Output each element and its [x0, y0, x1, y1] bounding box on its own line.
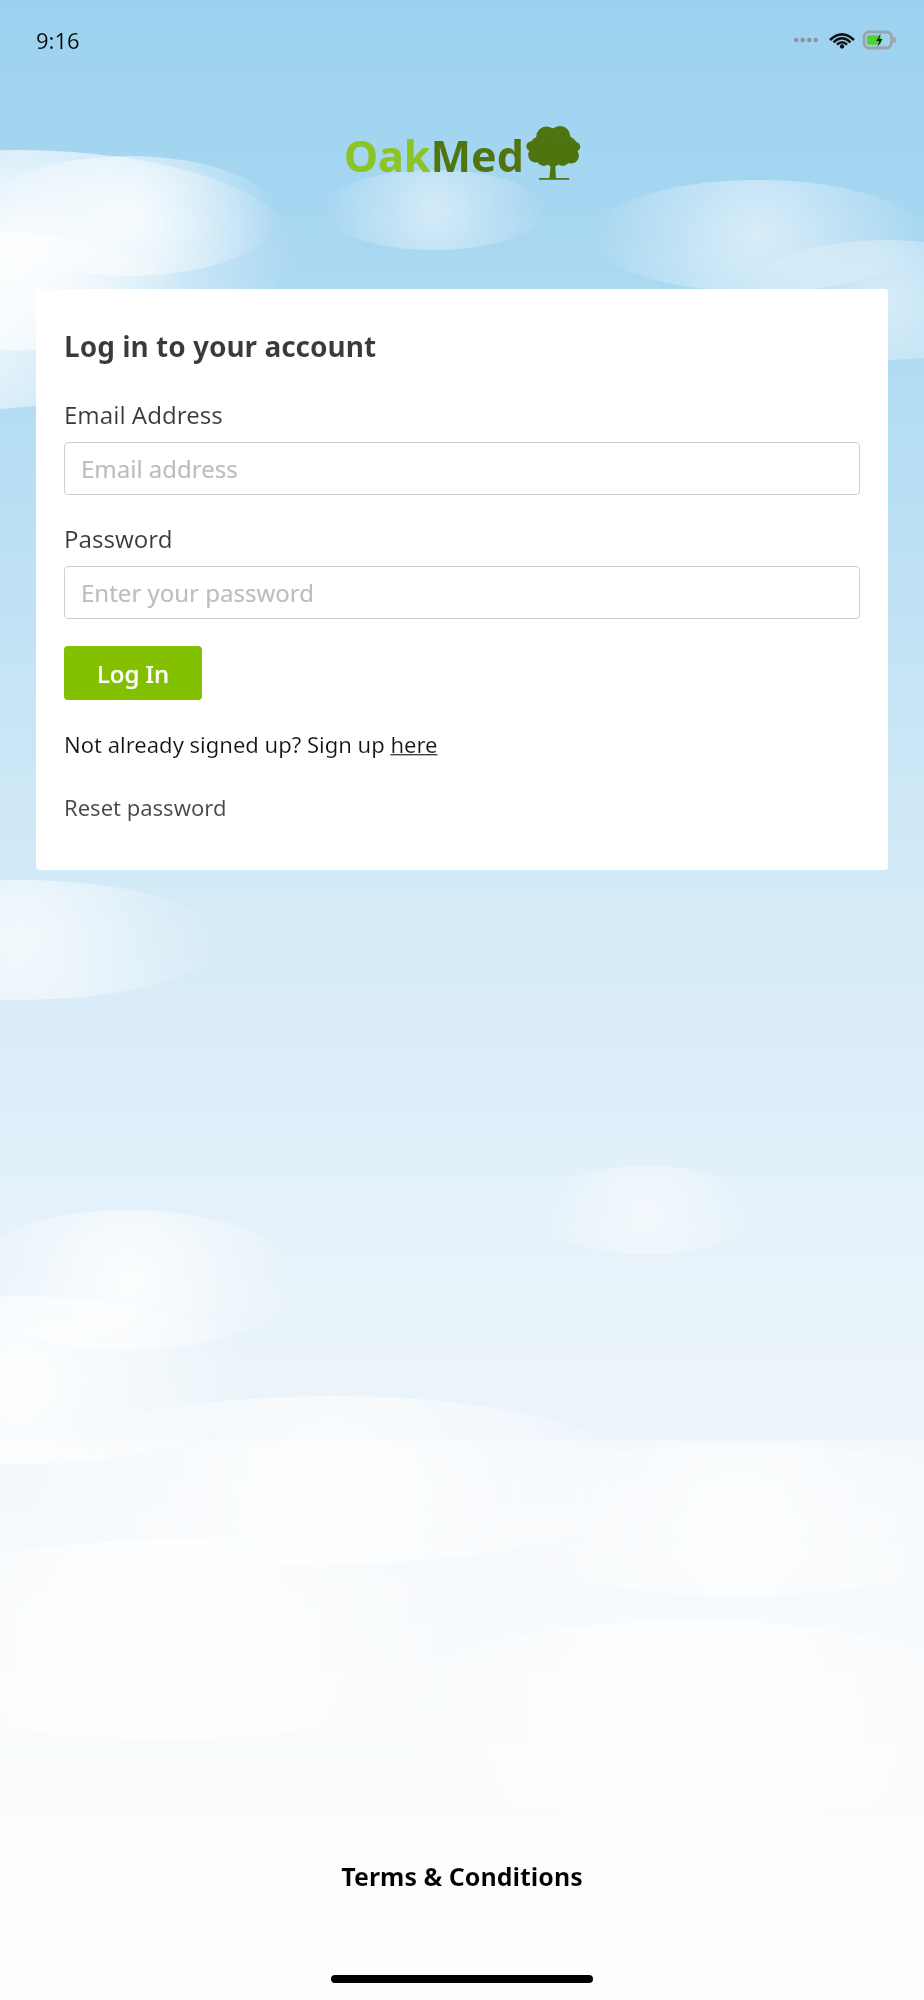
staticText: Terms & Conditions — [341, 1859, 583, 1893]
other: Home indicator — [331, 1975, 593, 1983]
button[interactable]: Terms & Conditions — [341, 1859, 583, 1893]
staticText: Log in to your account — [64, 327, 377, 365]
staticText: Reset password — [64, 792, 227, 822]
staticText: Enter your password — [81, 576, 315, 609]
staticText: 9:16 — [36, 25, 80, 55]
staticText: Password — [64, 522, 173, 555]
staticText: OakMed — [344, 126, 524, 185]
staticText: Email Address — [64, 398, 223, 431]
staticText: Email address — [81, 452, 238, 485]
button[interactable]: Enter your password — [64, 566, 860, 619]
button[interactable]: Reset password — [64, 792, 227, 822]
button[interactable]: Email address — [64, 442, 860, 495]
button[interactable]: Not already signed up? Sign up here — [64, 729, 438, 759]
staticText: Log In — [97, 657, 170, 690]
staticText: Not already signed up? Sign up here — [64, 729, 438, 759]
button[interactable]: Log In — [64, 646, 202, 700]
